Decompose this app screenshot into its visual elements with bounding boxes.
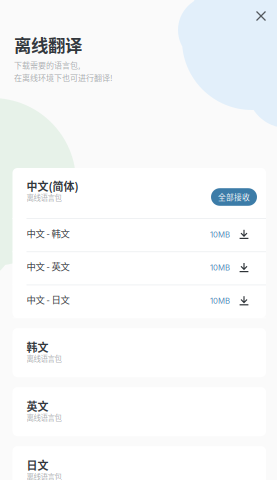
staticText: 离线翻译	[14, 32, 82, 57]
button[interactable]: 日文	[12, 446, 266, 480]
staticText: 离线语言包	[26, 353, 61, 364]
staticText: 中文 - 日文	[26, 293, 69, 306]
staticText: 韩文	[26, 339, 48, 355]
button[interactable]: 全部接收	[211, 188, 257, 206]
staticText: 中文 - 英文	[26, 259, 69, 273]
button[interactable]: 英文	[12, 387, 266, 436]
staticText: 离线语言包	[26, 471, 61, 480]
staticText: 离线语言包	[26, 192, 61, 203]
button[interactable]: 中文 - 英文	[12, 252, 266, 284]
staticText: 离线语言包	[26, 412, 61, 423]
staticText: 在离线环境下也可进行翻译!	[14, 72, 113, 83]
button[interactable]: 中文 - 日文	[12, 285, 266, 318]
staticText: 10MB	[210, 296, 230, 306]
staticText: 全部接收	[218, 191, 250, 203]
staticText: 10MB	[210, 263, 230, 272]
staticText: 日文	[26, 457, 48, 473]
staticText: 中文 - 韩文	[26, 226, 69, 240]
button[interactable]: 中文 - 韩文	[12, 219, 266, 251]
button[interactable]: 韩文	[12, 328, 266, 377]
staticText: 英文	[26, 398, 48, 414]
button[interactable]: Close	[244, 0, 277, 33]
staticText: 中文(简体)	[26, 178, 78, 194]
staticText: 10MB	[210, 230, 230, 239]
staticText: 下载需要的语言包,	[14, 59, 80, 71]
